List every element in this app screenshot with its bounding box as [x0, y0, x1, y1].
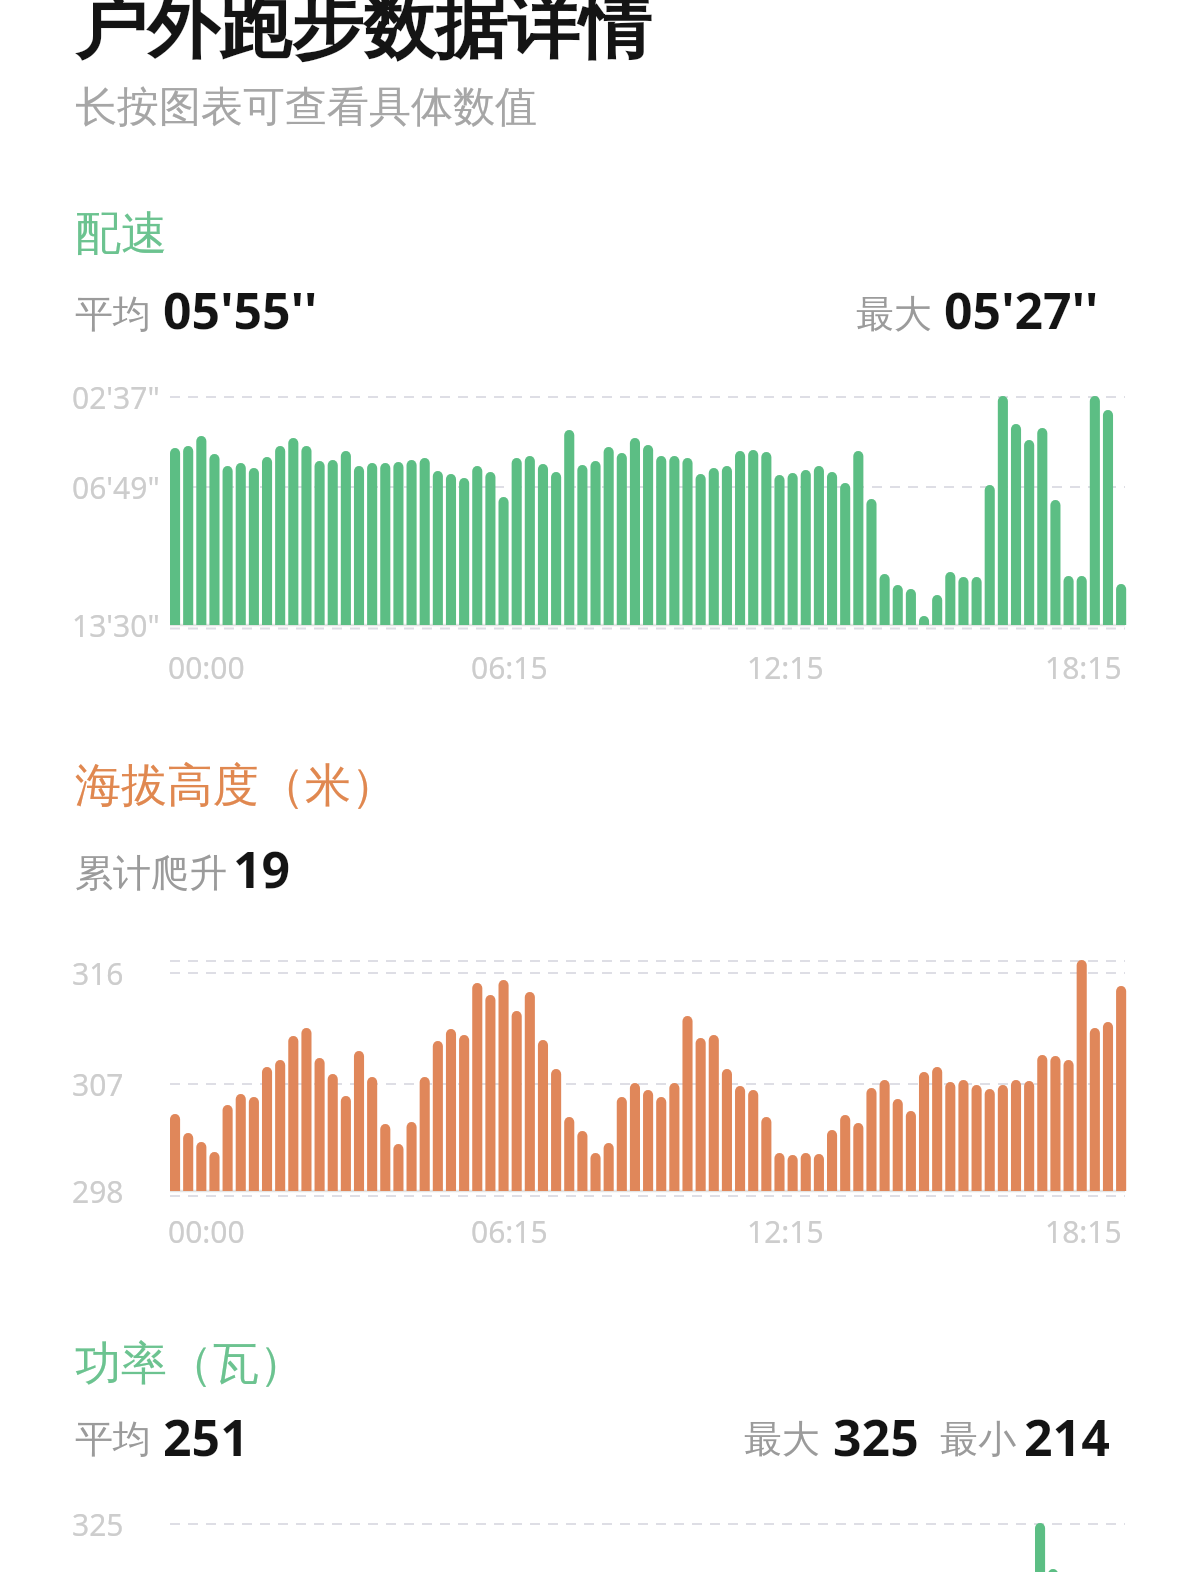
button[interactable]: [170, 950, 1125, 1195]
staticText: 06'49": [72, 467, 160, 508]
staticText: 海拔高度（米）: [75, 757, 397, 815]
staticText: 累计爬升: [75, 849, 227, 897]
staticText: 最大: [856, 290, 932, 338]
staticText: 325: [72, 1504, 124, 1545]
staticText: 251: [163, 1403, 249, 1471]
staticText: 户外跑步数据详情: [75, 0, 651, 73]
staticText: 18:15: [1045, 1211, 1122, 1252]
staticText: 06:15: [471, 1211, 548, 1252]
button[interactable]: [170, 385, 1125, 630]
staticText: 06:15: [471, 647, 548, 688]
staticText: 最小: [940, 1415, 1016, 1463]
staticText: 平均: [75, 1415, 151, 1463]
staticText: 298: [72, 1171, 124, 1212]
staticText: 05'27'': [944, 276, 1099, 344]
staticText: 00:00: [168, 647, 245, 688]
staticText: 功率（瓦）: [75, 1335, 305, 1393]
staticText: 02'37": [72, 377, 160, 418]
staticText: 214: [1024, 1403, 1110, 1471]
staticText: 325: [833, 1403, 919, 1471]
staticText: 00:00: [168, 1211, 245, 1252]
staticText: 长按图表可查看具体数值: [75, 81, 537, 134]
staticText: 307: [72, 1064, 124, 1105]
button[interactable]: [170, 1510, 1125, 1572]
staticText: 配速: [75, 205, 167, 263]
staticText: 最大: [744, 1415, 820, 1463]
staticText: 05'55'': [163, 276, 318, 344]
staticText: 13'30": [72, 605, 160, 646]
staticText: 19: [233, 835, 291, 903]
staticText: 平均: [75, 290, 151, 338]
staticText: 12:15: [747, 1211, 824, 1252]
staticText: 12:15: [747, 647, 824, 688]
staticText: 18:15: [1045, 647, 1122, 688]
staticText: 316: [72, 953, 124, 994]
